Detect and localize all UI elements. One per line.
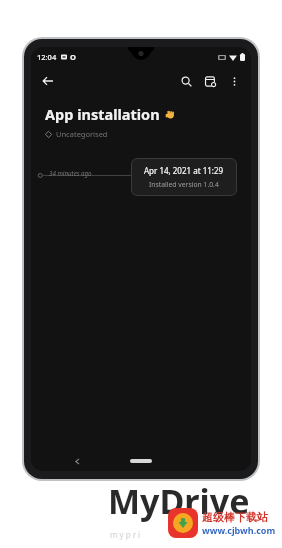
button[interactable]: Search: [174, 69, 198, 93]
staticText: 12:04: [37, 52, 57, 62]
staticText: App installation: [45, 104, 160, 124]
staticText: m y p r i: [110, 529, 141, 540]
button[interactable]: More options: [222, 69, 246, 93]
button[interactable]: Archive: [198, 69, 222, 93]
staticText: 34 minutes ago: [49, 169, 92, 177]
button[interactable]: Back: [36, 69, 60, 93]
staticText: Uncategorised: [56, 129, 108, 139]
staticText: O: [70, 52, 76, 62]
button[interactable]: Back: [69, 453, 85, 469]
button[interactable]: Apr 14, 2021 at 11:29: [131, 158, 237, 196]
staticText: MyDrive: [108, 478, 250, 524]
staticText: Apr 14, 2021 at 11:29: [144, 165, 224, 176]
staticText: Installed version 1.0.4: [149, 180, 219, 189]
staticText: 超级棒下载站: [202, 510, 268, 524]
button[interactable]: Home: [128, 456, 154, 466]
staticText: www.cjbwh.com: [202, 524, 276, 536]
